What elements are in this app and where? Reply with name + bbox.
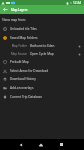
button[interactable]: Unloaded tile Tiles [0, 25, 84, 33]
button[interactable]: Add-on overlays [0, 83, 84, 92]
button[interactable]: Saved Map Folders [0, 33, 84, 42]
staticText: Unloaded tile Tiles [10, 27, 37, 31]
button[interactable]: Back [11, 139, 31, 150]
button[interactable]: Download History [0, 75, 84, 83]
staticText: Saved Map Folders [10, 36, 38, 40]
button[interactable]: Back [0, 5, 11, 14]
staticText: Select Areas for Download [10, 69, 49, 73]
button[interactable]: Map Folder [0, 42, 84, 50]
staticText: Map Layers [11, 8, 28, 12]
button[interactable]: Recent apps [51, 139, 71, 150]
staticText: 12:34 [73, 1, 82, 5]
staticText: Map Folder [2, 44, 27, 48]
staticText: Current Trip Database [10, 95, 42, 99]
staticText: Bathurst to Eden [30, 44, 78, 48]
button[interactable]: Select Areas for Download [0, 66, 84, 75]
staticText: Prebuilt Map [10, 60, 29, 64]
staticText: Show map from: [2, 18, 26, 22]
staticText: Map Source [2, 52, 27, 56]
button[interactable]: Current Trip Database [0, 92, 84, 101]
button[interactable]: Prebuilt Map [0, 58, 84, 66]
staticText: Open Cycle Map [30, 52, 78, 56]
staticText: Download History [10, 77, 36, 81]
staticText: Add-on overlays [10, 86, 34, 90]
button[interactable]: Map Source [0, 50, 84, 58]
button[interactable]: Home [31, 139, 51, 150]
